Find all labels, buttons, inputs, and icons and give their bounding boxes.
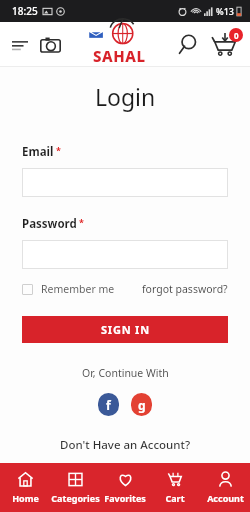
staticText: Remember me	[41, 282, 115, 296]
staticText: Home	[12, 492, 39, 504]
staticText: Favorites	[104, 492, 146, 504]
staticText: f	[106, 397, 111, 413]
button[interactable]: Favorites	[100, 463, 150, 512]
staticText: Don't Have an Account?	[60, 437, 191, 453]
button[interactable]: Menu	[7, 31, 33, 57]
staticText: Account	[207, 492, 244, 504]
staticText: %13	[216, 5, 234, 17]
staticText: *	[56, 144, 61, 156]
button[interactable]: Account	[200, 463, 250, 512]
button[interactable]: Continue with Facebook	[98, 393, 119, 416]
button[interactable]	[22, 168, 228, 197]
button[interactable]: Home	[0, 463, 50, 512]
button[interactable]: Cart, 0 items	[208, 27, 242, 61]
button[interactable]: Categories	[50, 463, 100, 512]
staticText: Password	[22, 216, 77, 232]
button[interactable]: Search	[172, 29, 202, 59]
button[interactable]: Scan with camera	[36, 30, 64, 58]
staticText: 0	[234, 30, 239, 41]
button[interactable]: Cart	[150, 463, 200, 512]
button[interactable]: Continue with Google	[131, 393, 152, 416]
staticText: Cart	[165, 492, 185, 504]
button[interactable]	[22, 240, 228, 269]
staticText: *	[79, 216, 84, 228]
button[interactable]: Remember me	[22, 282, 115, 296]
staticText: Login	[95, 81, 156, 112]
staticText: 18:25	[12, 4, 38, 18]
staticText: forgot password?	[142, 282, 228, 296]
button[interactable]: Don't Have an Account?	[60, 437, 191, 453]
staticText: Or, Continue With	[82, 366, 169, 380]
staticText: SAHAL	[93, 46, 146, 66]
button[interactable]: SIGN IN	[22, 316, 228, 343]
staticText: Email	[22, 144, 54, 160]
staticText: Categories	[51, 492, 100, 504]
button[interactable]: forgot password?	[142, 282, 228, 296]
staticText: SIGN IN	[101, 322, 150, 337]
staticText: g	[138, 397, 146, 413]
